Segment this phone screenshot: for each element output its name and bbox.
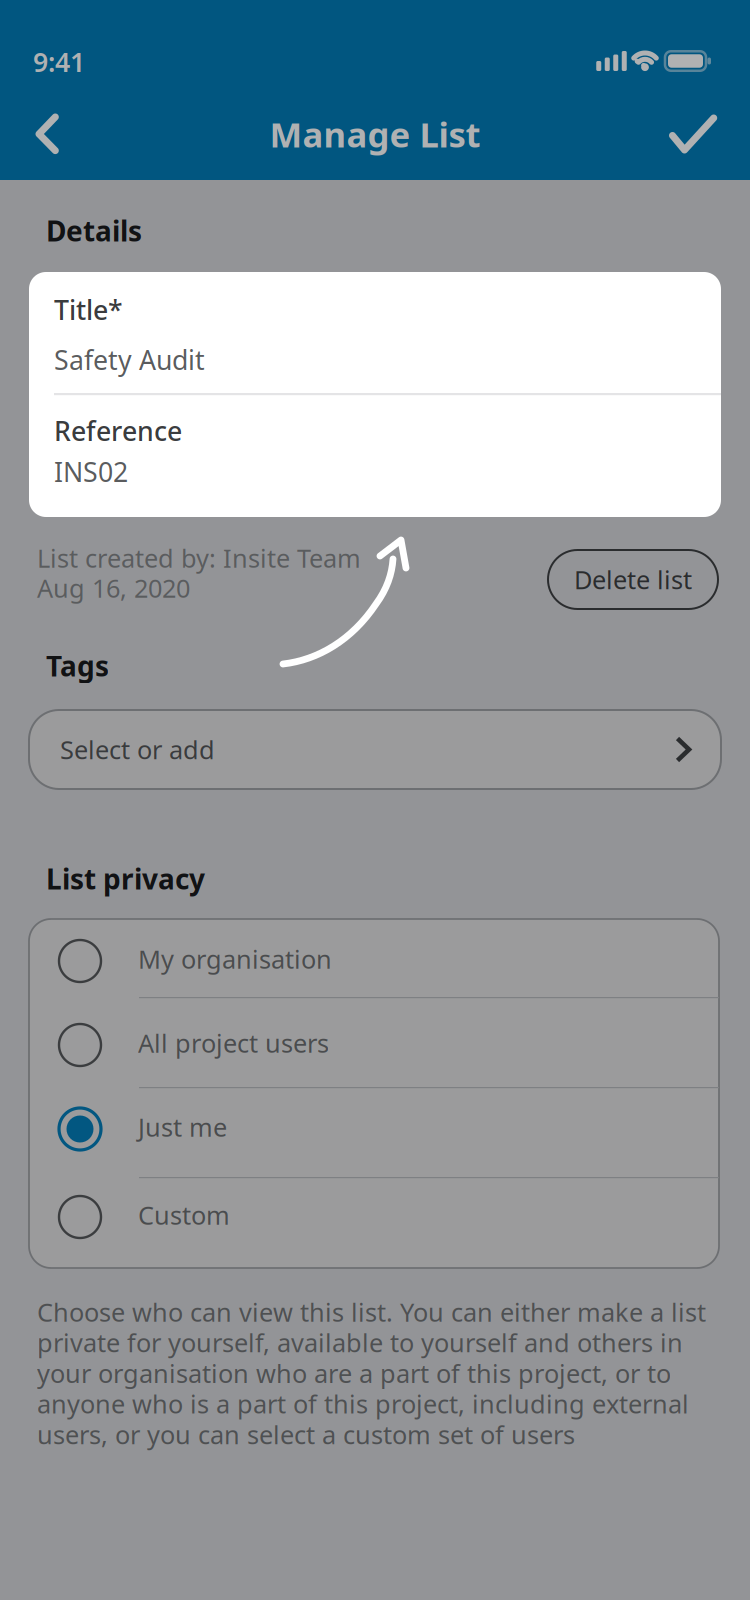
- staticText: Aug 16, 2020: [37, 571, 190, 605]
- staticText: Reference: [54, 413, 182, 448]
- staticText: Custom: [138, 1198, 230, 1232]
- staticText: Choose who can view this list. You can e…: [37, 1295, 706, 1451]
- staticText: List privacy: [46, 860, 205, 897]
- staticText: Tags: [46, 647, 109, 684]
- staticText: Manage List: [269, 111, 480, 157]
- staticText: Just me: [138, 1110, 227, 1144]
- button[interactable]: Custom: [29, 1177, 719, 1268]
- button[interactable]: All project users: [29, 997, 719, 1087]
- staticText: 9:41: [33, 44, 85, 79]
- button[interactable]: Delete list: [548, 550, 718, 609]
- staticText: Select or add: [60, 733, 215, 766]
- staticText: My organisation: [138, 942, 332, 976]
- staticText: Title*: [54, 292, 123, 327]
- staticText: Details: [46, 212, 142, 249]
- staticText: INS02: [54, 454, 128, 489]
- staticText: List created by: Insite Team: [37, 541, 361, 575]
- staticText: Safety Audit: [54, 342, 205, 377]
- button[interactable]: Back: [7, 90, 87, 178]
- button[interactable]: Select or add: [29, 710, 721, 789]
- staticText: All project users: [138, 1026, 329, 1060]
- staticText: Delete list: [574, 563, 692, 596]
- button[interactable]: My organisation: [29, 919, 719, 997]
- button[interactable]: Save: [650, 90, 736, 178]
- button[interactable]: Just me: [29, 1087, 719, 1177]
